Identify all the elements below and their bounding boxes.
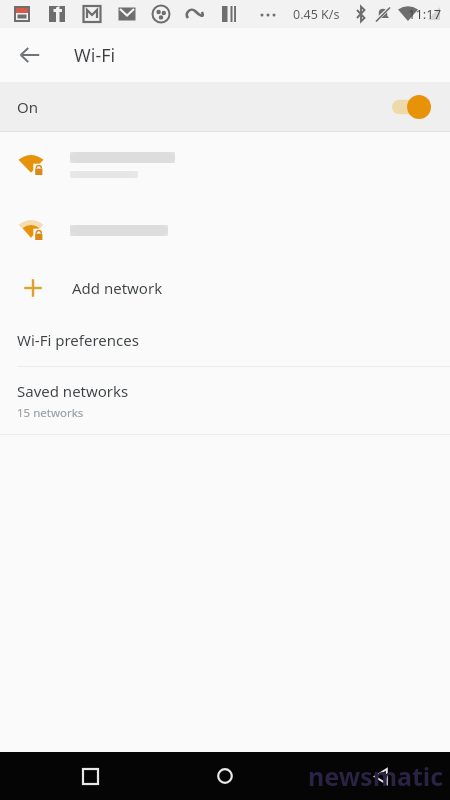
button[interactable]: Add network [0, 262, 450, 314]
staticText: Wi-Fi [74, 43, 116, 68]
staticText: newsmatic [308, 759, 444, 793]
staticText: On [17, 97, 38, 117]
button[interactable]: Wi-Fi network [0, 198, 450, 262]
staticText: Wi-Fi preferences [17, 330, 139, 350]
button[interactable]: Wi-Fi preferences [0, 314, 450, 366]
button[interactable]: On [0, 82, 450, 131]
staticText: Add network [72, 278, 163, 298]
staticText: 11:17 [408, 5, 442, 23]
staticText: Saved networks [17, 381, 129, 401]
button[interactable]: Home [205, 756, 245, 796]
button[interactable]: Back [10, 35, 50, 75]
staticText: 15 networks [17, 405, 84, 421]
button[interactable]: Wi-Fi network [0, 132, 450, 198]
staticText: 0.45 K/s [293, 6, 340, 23]
button[interactable]: Back [360, 756, 400, 796]
button[interactable]: Recent apps [70, 756, 110, 796]
button[interactable]: Saved networks [0, 367, 450, 434]
